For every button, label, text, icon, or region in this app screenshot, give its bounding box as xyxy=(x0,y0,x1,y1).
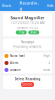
staticText: Sound Magnifier xyxy=(10,15,44,20)
staticText: Noise level xyxy=(10,54,25,58)
staticText: Delete Recording xyxy=(14,77,40,81)
staticText: Share xyxy=(30,31,37,34)
staticText: Alerts xyxy=(10,61,18,65)
button[interactable]: Noise level xyxy=(3,52,52,59)
button[interactable]: Location xyxy=(3,66,52,73)
button[interactable]: Edit xyxy=(47,3,53,8)
staticText: Play xyxy=(19,31,24,34)
staticText: Location xyxy=(10,68,21,72)
staticText: Duration 00:42 xyxy=(16,26,38,29)
button[interactable]: Share xyxy=(28,30,39,34)
button[interactable]: Delete xyxy=(21,82,34,87)
staticText: Home xyxy=(42,68,50,72)
staticText: 12/12/2023 10:24 AM xyxy=(11,21,44,25)
button[interactable]: Back xyxy=(2,3,11,8)
button[interactable]: Alerts xyxy=(3,59,52,66)
staticText: Transcript xyxy=(21,40,34,44)
staticText: High xyxy=(43,54,50,58)
staticText: Delete xyxy=(22,83,32,86)
button[interactable]: Play xyxy=(16,30,27,34)
staticText: Recording xyxy=(19,0,38,11)
staticText: 2 xyxy=(48,61,50,65)
staticText: Back xyxy=(2,3,11,8)
staticText: Edit xyxy=(47,3,53,8)
staticText: Processing complete xyxy=(13,45,42,48)
